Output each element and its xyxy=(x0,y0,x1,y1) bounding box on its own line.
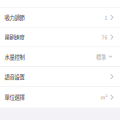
staticText: 1 xyxy=(105,13,108,21)
staticText: m² xyxy=(101,93,108,101)
staticText: 邊刷速度 xyxy=(4,33,24,41)
staticText: 吸力調節 xyxy=(4,13,24,21)
button[interactable]: 邊刷速度 xyxy=(0,27,120,47)
staticText: 水量控制 xyxy=(4,53,24,61)
button[interactable]: 水量控制 xyxy=(0,47,120,66)
staticText: 單位選擇 xyxy=(4,93,24,101)
staticText: 標準 xyxy=(96,53,106,61)
button[interactable]: 語音設置 xyxy=(0,67,120,86)
button[interactable]: 吸力調節 xyxy=(0,8,120,27)
staticText: 語音設置 xyxy=(4,73,24,80)
button[interactable]: 單位選擇 xyxy=(0,87,120,108)
staticText: 76 xyxy=(102,33,108,41)
